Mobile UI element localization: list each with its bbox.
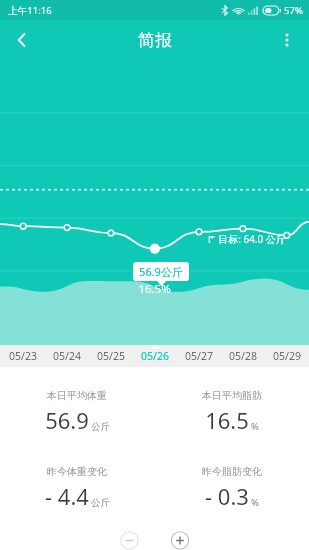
staticText: 目标: 64.0 公斤 bbox=[218, 232, 286, 246]
button[interactable]: 05/29 bbox=[265, 345, 309, 367]
staticText: 上午11:16 bbox=[8, 4, 52, 17]
staticText: 57% bbox=[284, 4, 303, 17]
staticText: % bbox=[251, 496, 259, 509]
staticText: 16.5% bbox=[138, 281, 171, 297]
button[interactable]: Increase bbox=[163, 531, 197, 550]
staticText: 05/24 bbox=[53, 349, 81, 363]
button[interactable]: 05/25 bbox=[89, 345, 133, 367]
staticText: 昨今体重变化 bbox=[47, 465, 107, 478]
button[interactable]: 05/26 bbox=[133, 345, 177, 367]
button[interactable]: 05/23 bbox=[0, 345, 45, 367]
button[interactable]: 本日平均体重 bbox=[0, 389, 154, 435]
staticText: 05/23 bbox=[9, 349, 37, 363]
staticText: - 0.3 bbox=[205, 481, 249, 511]
staticText: % bbox=[251, 420, 259, 433]
button[interactable]: 昨今脂肪变化 bbox=[154, 465, 309, 511]
staticText: 05/26 bbox=[141, 349, 169, 363]
staticText: 本日平均体重 bbox=[47, 389, 107, 402]
button[interactable]: 05/27 bbox=[177, 345, 221, 367]
staticText: 昨今脂肪变化 bbox=[202, 465, 262, 478]
staticText: 16.5 bbox=[205, 405, 249, 435]
staticText: 公斤 bbox=[91, 497, 110, 509]
button[interactable]: More options bbox=[265, 20, 309, 60]
button[interactable]: 本日平均脂肪 bbox=[154, 389, 309, 435]
staticText: 05/29 bbox=[273, 349, 301, 363]
button[interactable]: Back bbox=[0, 20, 44, 60]
staticText: 05/28 bbox=[229, 349, 257, 363]
staticText: 05/27 bbox=[185, 349, 213, 363]
button[interactable]: 05/24 bbox=[45, 345, 89, 367]
button[interactable]: Decrease bbox=[114, 531, 145, 550]
staticText: 本日平均脂肪 bbox=[202, 389, 262, 402]
staticText: 简报 bbox=[138, 30, 172, 51]
staticText: 56.9公斤 bbox=[139, 264, 183, 279]
button[interactable]: 05/28 bbox=[221, 345, 265, 367]
staticText: - 4.4 bbox=[45, 481, 89, 511]
staticText: 56.9 bbox=[45, 405, 89, 435]
button[interactable]: 昨今体重变化 bbox=[0, 465, 154, 511]
staticText: 05/25 bbox=[97, 349, 125, 363]
staticText: 公斤 bbox=[91, 421, 110, 433]
